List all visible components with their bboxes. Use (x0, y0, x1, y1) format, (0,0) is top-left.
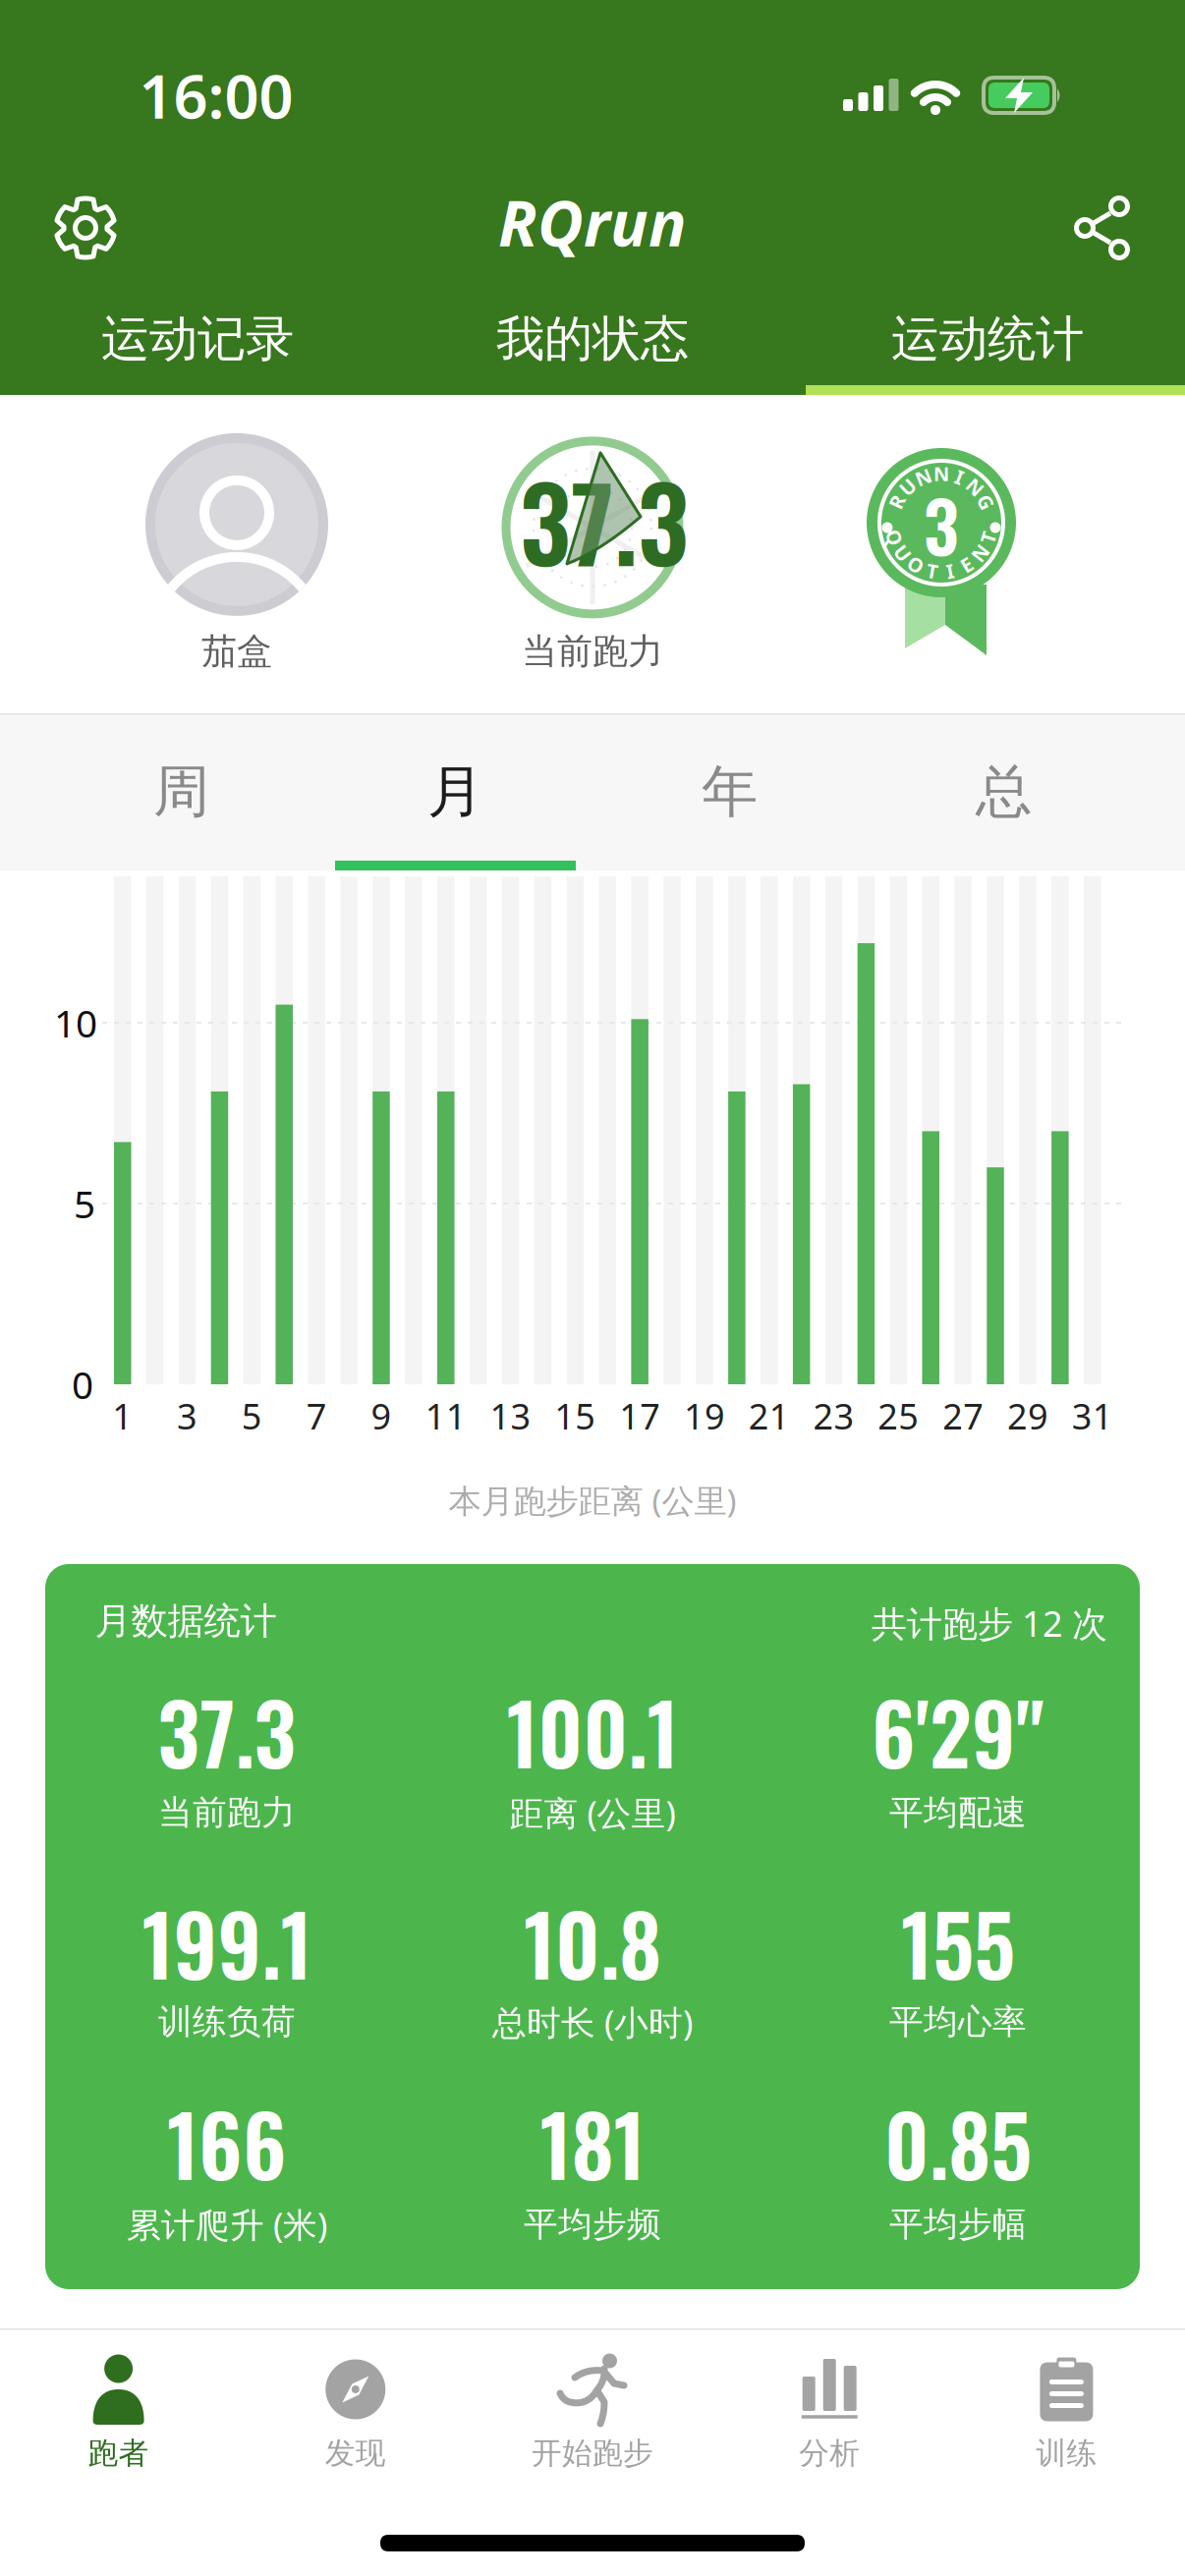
button[interactable] (53, 196, 118, 260)
staticText: 37.3 (158, 1670, 296, 1792)
button[interactable]: 开始跑步 (474, 2328, 711, 2576)
staticText: 月数据统计 (95, 1599, 277, 1644)
staticText: N (933, 460, 949, 487)
staticText: 运动记录 (101, 309, 294, 369)
staticText: RQrun (498, 180, 687, 264)
staticText: 月 (427, 757, 483, 826)
staticText: 9 (371, 1392, 391, 1439)
button[interactable]: 跑者 (0, 2328, 237, 2576)
staticText: 181 (540, 2082, 645, 2204)
staticText: 25 (878, 1392, 919, 1439)
staticText: 本月跑步距离 (公里) (449, 1478, 736, 1522)
staticText: 发现 (325, 2435, 386, 2472)
staticText: 总 (976, 757, 1032, 826)
staticText: I (956, 464, 963, 490)
staticText: E (961, 552, 972, 578)
staticText: 166 (167, 2082, 287, 2204)
staticText: 11 (425, 1392, 467, 1439)
staticText: 平均心率 (889, 2001, 1027, 2043)
staticText: 年 (702, 757, 758, 826)
button[interactable]: 年 (592, 723, 867, 861)
staticText: I (946, 558, 954, 584)
button[interactable]: 运动记录 (0, 295, 395, 383)
staticText: 开始跑步 (532, 2435, 653, 2472)
button[interactable]: 茄盒 (145, 433, 328, 673)
staticText: 我的状态 (496, 309, 689, 369)
staticText: U (900, 474, 915, 500)
staticText: 21 (749, 1392, 790, 1439)
staticText: 平均步频 (524, 2203, 661, 2245)
staticText: 6'29" (872, 1670, 1044, 1792)
staticText: U (895, 540, 910, 566)
staticText: 199.1 (142, 1881, 312, 2004)
staticText: 5 (74, 1178, 95, 1229)
staticText: 距离 (公里) (509, 1790, 676, 1835)
staticText: 15 (554, 1392, 596, 1439)
staticText: 37.3 (520, 446, 689, 595)
staticText: 平均配速 (889, 1792, 1027, 1834)
button[interactable]: 发现 (237, 2328, 474, 2576)
button[interactable]: 周 (44, 723, 318, 861)
button[interactable]: 运动统计 (790, 295, 1185, 383)
staticText: 训练负荷 (158, 2001, 296, 2043)
staticText: 5 (242, 1392, 262, 1439)
button[interactable]: 37.3 (506, 441, 679, 673)
staticText: 当前跑力 (522, 630, 663, 673)
staticText: 31 (1072, 1392, 1113, 1439)
button[interactable]: 我的状态 (395, 295, 790, 383)
staticText: 当前跑力 (158, 1792, 296, 1834)
staticText: 10.8 (524, 1881, 661, 2004)
button[interactable]: 3 (866, 447, 1017, 657)
staticText: 跑者 (88, 2435, 149, 2472)
staticText: 分析 (799, 2435, 860, 2472)
staticText: 1 (112, 1392, 133, 1439)
staticText: N (972, 540, 988, 566)
staticText: 3 (924, 473, 959, 576)
staticText: 19 (684, 1392, 725, 1439)
button[interactable]: 总 (867, 723, 1141, 861)
staticText: 0 (72, 1359, 93, 1409)
staticText: 运动统计 (891, 309, 1084, 369)
button[interactable]: 分析 (711, 2328, 948, 2576)
staticText: 3 (177, 1392, 198, 1439)
staticText: 总时长 (小时) (492, 1999, 693, 2044)
button[interactable]: 训练 (948, 2328, 1185, 2576)
staticText: 累计爬升 (米) (127, 2202, 327, 2247)
button[interactable] (1073, 196, 1132, 260)
staticText: G (979, 489, 993, 515)
staticText: 100.1 (507, 1670, 678, 1792)
staticText: 155 (901, 1881, 1015, 2004)
staticText: 17 (619, 1392, 660, 1439)
staticText: Q (887, 524, 902, 551)
staticText: 0.85 (884, 2082, 1032, 2204)
staticText: N (915, 464, 931, 490)
staticText: T (982, 524, 994, 551)
staticText: 共计跑步 12 次 (872, 1600, 1107, 1646)
staticText: 10 (54, 997, 97, 1048)
staticText: 平均步幅 (889, 2203, 1027, 2245)
button[interactable]: 月 (318, 723, 592, 861)
staticText: N (967, 474, 983, 500)
staticText: 27 (942, 1392, 984, 1439)
staticText: R (890, 489, 903, 515)
staticText: 茄盒 (201, 630, 272, 673)
staticText: O (908, 552, 924, 578)
staticText: 13 (490, 1392, 531, 1439)
staticText: 周 (153, 757, 209, 826)
staticText: 训练 (1036, 2435, 1097, 2472)
staticText: 29 (1007, 1392, 1048, 1439)
staticText: T (927, 558, 938, 584)
staticText: 7 (306, 1392, 327, 1439)
staticText: 23 (813, 1392, 854, 1439)
staticText: 16:00 (139, 55, 293, 135)
